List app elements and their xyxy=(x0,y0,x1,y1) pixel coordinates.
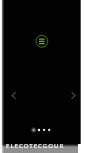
button[interactable]: Page indicator xyxy=(30,126,54,134)
button[interactable]: Menu xyxy=(35,34,50,49)
staticText: ELECOTECGOUR xyxy=(6,141,65,149)
button[interactable]: Next xyxy=(66,89,79,102)
button[interactable]: Previous xyxy=(8,89,21,102)
